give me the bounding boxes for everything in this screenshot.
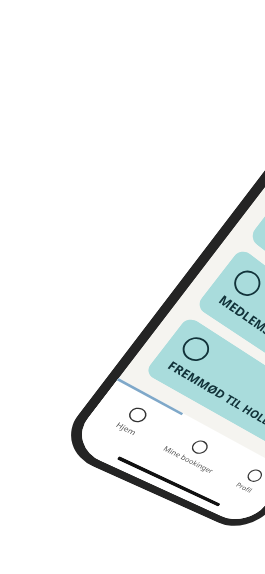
staticText: Mine bookinger <box>162 443 216 475</box>
button[interactable]: FREMMØD TIL HOLD <box>144 315 265 456</box>
staticText: Hjem <box>114 420 139 437</box>
staticText: FREMMØD TIL HOLD <box>164 357 265 429</box>
staticText: Profil <box>234 480 255 494</box>
button[interactable]: Profil <box>206 445 265 513</box>
button[interactable]: Mine bookinger <box>147 413 241 488</box>
button[interactable]: Hjem <box>81 378 183 459</box>
staticText: MEDLEMSFORDELE <box>215 291 265 366</box>
button[interactable]: BOOK HOLD <box>248 176 265 343</box>
button[interactable]: MEDLEMSFORDELE <box>195 247 265 400</box>
